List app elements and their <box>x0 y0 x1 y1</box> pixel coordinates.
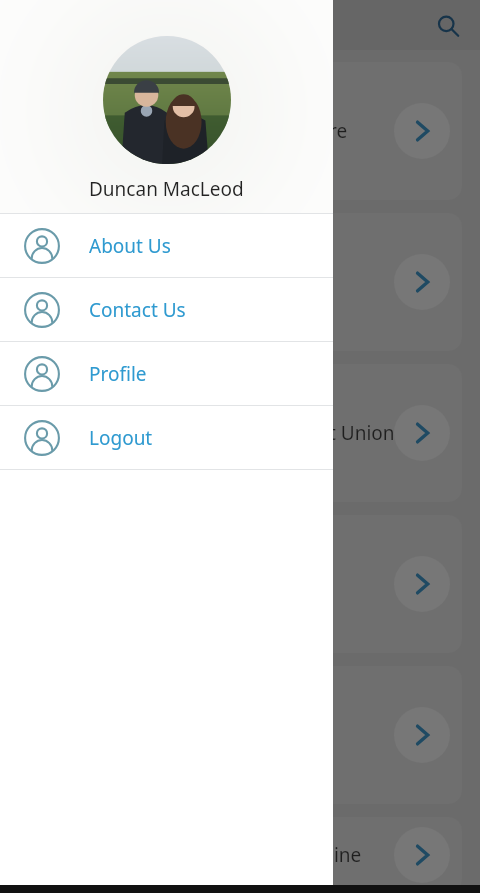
button[interactable]: …re <box>18 62 462 200</box>
staticText: About Us <box>89 233 171 259</box>
button[interactable]: Open <box>394 556 450 612</box>
button[interactable]: Profile photo <box>103 36 231 164</box>
button[interactable]: Logout <box>0 406 333 469</box>
staticText: Logout <box>89 425 153 451</box>
button[interactable]: Profile photo <box>0 0 333 213</box>
staticText: Profile <box>89 361 147 387</box>
button[interactable]: …t Union <box>18 364 462 502</box>
button[interactable]: Open <box>394 405 450 461</box>
button[interactable]: About Us <box>0 214 333 277</box>
staticText: …re <box>314 118 348 144</box>
button[interactable]: Open <box>18 666 462 804</box>
button[interactable]: Open <box>18 515 462 653</box>
staticText: …line <box>314 842 362 868</box>
button[interactable]: Open <box>18 213 462 351</box>
button[interactable]: Open <box>394 254 450 310</box>
button[interactable]: Open <box>394 103 450 159</box>
button[interactable]: Open <box>394 707 450 763</box>
staticText: …t Union <box>314 420 395 446</box>
button[interactable]: …line <box>18 817 462 893</box>
staticText: Contact Us <box>89 297 186 323</box>
staticText: Duncan MacLeod <box>89 176 244 202</box>
button[interactable]: Search <box>430 8 466 44</box>
button[interactable]: Profile <box>0 342 333 405</box>
button[interactable]: Contact Us <box>0 278 333 341</box>
button[interactable]: Open <box>394 827 450 883</box>
